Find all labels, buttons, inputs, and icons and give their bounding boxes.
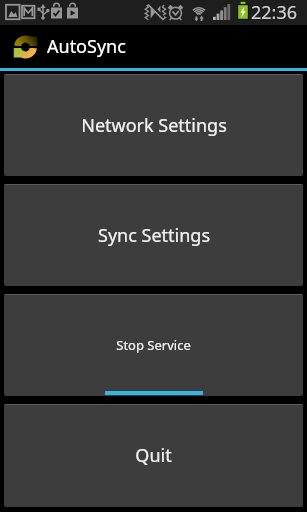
staticText: Network Settings (81, 113, 227, 138)
button[interactable]: Network Settings (4, 74, 303, 176)
staticText: Sync Settings (98, 223, 210, 248)
staticText: Stop Service (116, 336, 191, 354)
staticText: Quit (135, 443, 172, 468)
button[interactable]: Quit (4, 404, 303, 507)
button[interactable]: Sync Settings (4, 184, 303, 286)
button[interactable]: Stop Service (4, 294, 303, 396)
staticText: 22:36 (251, 0, 298, 25)
staticText: AutoSync (47, 34, 126, 59)
